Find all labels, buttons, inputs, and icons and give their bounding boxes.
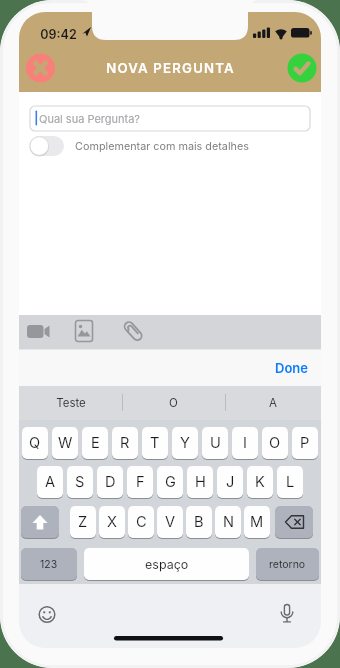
staticText: Qual sua Pergunta? — [39, 112, 140, 125]
staticText: Z — [78, 513, 88, 531]
staticText: 09:42 — [40, 27, 77, 42]
staticText: NOVA PERGUNTA — [106, 60, 235, 76]
staticText: S — [75, 473, 85, 491]
staticText: W — [58, 434, 73, 452]
staticText: D — [105, 473, 116, 491]
staticText: retorno — [269, 558, 306, 571]
staticText: espaço — [145, 557, 189, 572]
staticText: U — [210, 434, 221, 452]
staticText: C — [136, 513, 147, 531]
staticText: Teste — [56, 396, 86, 410]
staticText: O — [169, 396, 178, 410]
staticText: B — [194, 513, 204, 531]
staticText: Complementar com mais detalhes — [75, 140, 249, 153]
staticText: E — [91, 434, 100, 452]
staticText: 123 — [40, 558, 58, 571]
staticText: G — [165, 473, 176, 491]
staticText: L — [286, 473, 295, 491]
staticText: A — [269, 396, 277, 410]
staticText: M — [250, 513, 264, 531]
staticText: O — [269, 434, 281, 452]
staticText: Done — [275, 360, 308, 376]
staticText: T — [150, 434, 160, 452]
staticText: N — [223, 513, 234, 531]
staticText: K — [255, 473, 265, 491]
staticText: Y — [180, 434, 190, 452]
staticText: X — [107, 513, 117, 531]
staticText: J — [226, 473, 235, 491]
staticText: A — [45, 473, 56, 491]
staticText: P — [300, 434, 310, 452]
staticText: R — [120, 434, 130, 452]
staticText: H — [195, 473, 206, 491]
staticText: Q — [29, 434, 41, 452]
staticText: F — [136, 473, 145, 491]
staticText: V — [165, 513, 176, 531]
staticText: I — [243, 434, 247, 452]
